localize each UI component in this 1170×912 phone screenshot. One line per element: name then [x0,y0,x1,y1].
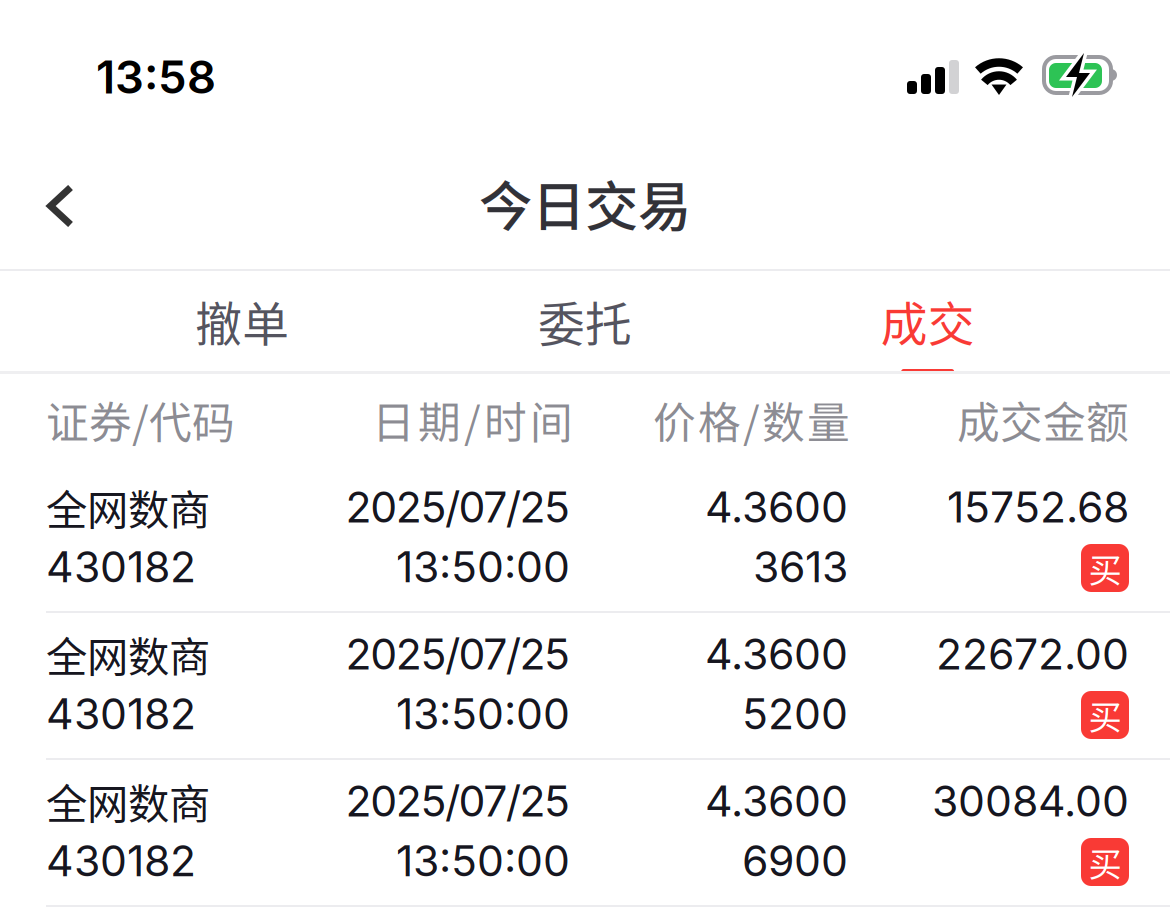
button[interactable]: 委托 [414,271,756,371]
staticText: 买 [1088,838,1121,886]
staticText: 2025/07/25 [346,775,570,827]
staticText: 430182 [46,541,196,593]
staticText: 6900 [742,835,848,887]
staticText: 430182 [46,835,196,887]
staticText: 撤单 [195,287,289,355]
staticText: 买 [1088,691,1121,739]
staticText: 2025/07/25 [346,628,570,680]
staticText: 30084.00 [932,775,1129,827]
staticText: 全网数商 [46,771,210,831]
staticText: 成交 [881,287,975,355]
staticText: 今日交易 [479,164,691,242]
staticText: 13:58 [96,50,216,104]
button[interactable]: Back [0,150,104,256]
staticText: 2025/07/25 [346,481,570,533]
staticText: 全网数商 [46,477,210,537]
staticText: 13:50:00 [396,835,570,887]
staticText: 日期/时间 [372,389,573,451]
staticText: 22672.00 [936,628,1129,680]
button[interactable]: 成交 [756,271,1099,371]
staticText: 买 [1088,544,1121,592]
staticText: 委托 [538,287,632,355]
staticText: 13:50:00 [396,688,570,740]
staticText: 15752.68 [947,481,1129,533]
staticText: 4.3600 [705,481,848,533]
button[interactable]: 全网数商 [0,466,1170,613]
button[interactable]: 撤单 [71,271,414,371]
staticText: 5200 [742,688,848,740]
staticText: 4.3600 [705,775,848,827]
button[interactable]: 全网数商 [0,613,1170,760]
button[interactable]: 全网数商 [0,760,1170,907]
staticText: 证券/代码 [46,389,235,451]
staticText: 13:50:00 [396,541,570,593]
staticText: 成交金额 [957,389,1129,451]
staticText: 4.3600 [705,628,848,680]
staticText: 价格/数量 [653,389,850,451]
staticText: 3613 [753,541,848,593]
staticText: 全网数商 [46,624,210,684]
staticText: 430182 [46,688,196,740]
